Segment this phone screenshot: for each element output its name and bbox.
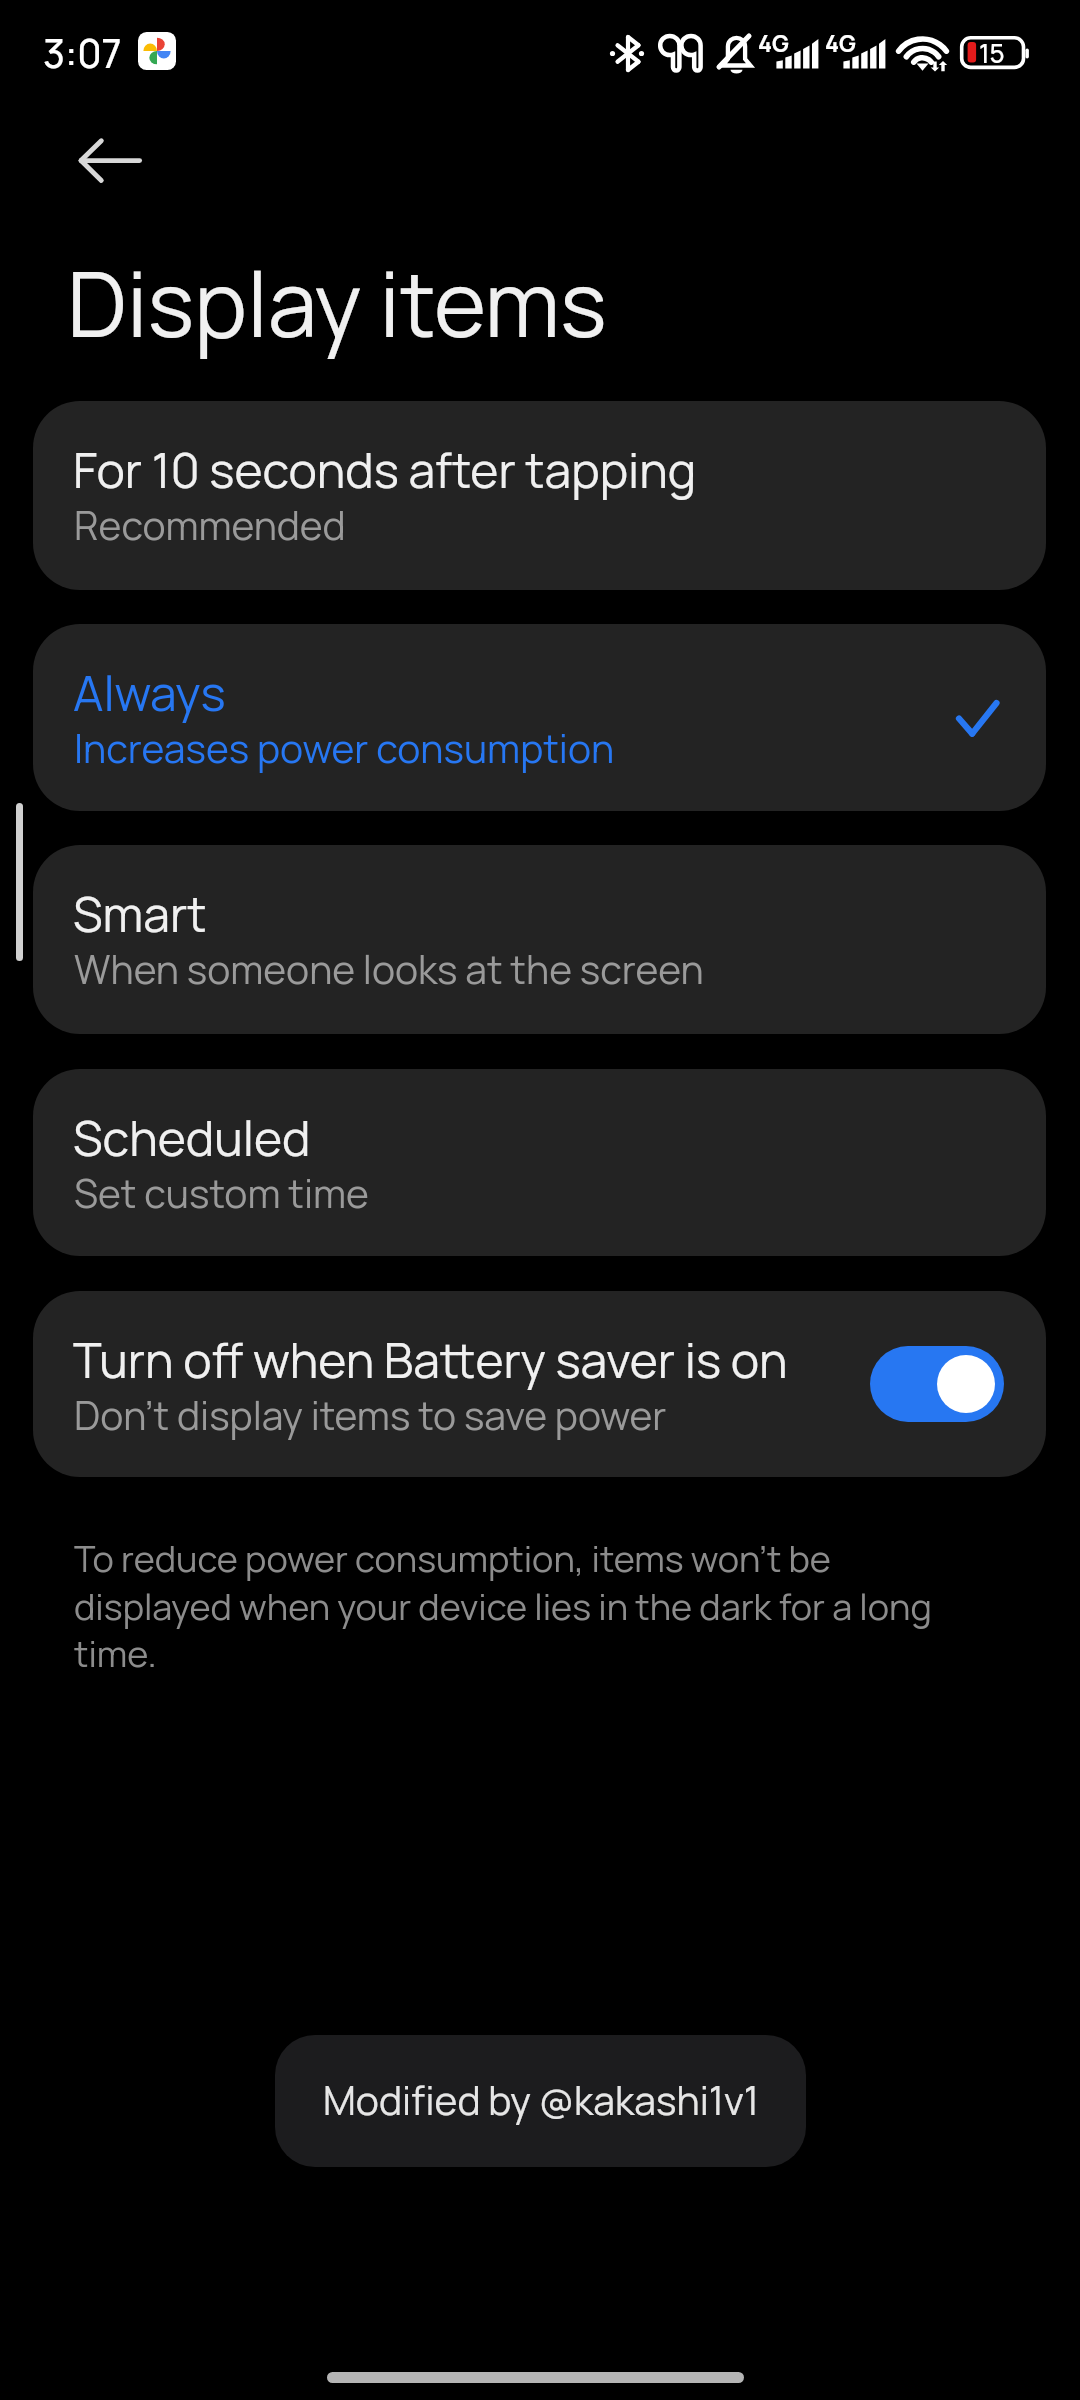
staticText: Display items bbox=[67, 242, 607, 364]
staticText: When someone looks at the screen bbox=[74, 942, 704, 995]
staticText: For 10 seconds after tapping bbox=[73, 437, 697, 503]
button[interactable]: For 10 seconds after tapping bbox=[33, 401, 1046, 590]
staticText: Recommended bbox=[74, 498, 346, 551]
staticText: 4G bbox=[825, 27, 856, 58]
staticText: Don't display items to save power bbox=[74, 1388, 667, 1441]
staticText: 15 bbox=[979, 35, 1005, 71]
button[interactable]: Scheduled bbox=[33, 1069, 1046, 1256]
staticText: Set custom time bbox=[74, 1166, 369, 1219]
button[interactable]: Turn off when Battery saver is on bbox=[870, 1346, 1004, 1422]
staticText: Smart bbox=[73, 881, 207, 947]
staticText: Always bbox=[73, 660, 226, 726]
staticText: Increases power consumption bbox=[74, 721, 615, 774]
staticText: To reduce power consumption, items won't… bbox=[74, 1534, 994, 1677]
staticText: 4G bbox=[758, 27, 789, 58]
staticText: Scheduled bbox=[73, 1105, 311, 1171]
button[interactable]: Smart bbox=[33, 845, 1046, 1034]
button[interactable]: Turn off when Battery saver is on bbox=[33, 1291, 1046, 1477]
button[interactable]: Back bbox=[62, 112, 158, 208]
staticText: Turn off when Battery saver is on bbox=[73, 1327, 788, 1393]
button[interactable]: Always bbox=[33, 624, 1046, 811]
staticText: 3:07 bbox=[43, 26, 122, 79]
staticText: Modified by @kakashi1v1 bbox=[323, 2073, 759, 2126]
